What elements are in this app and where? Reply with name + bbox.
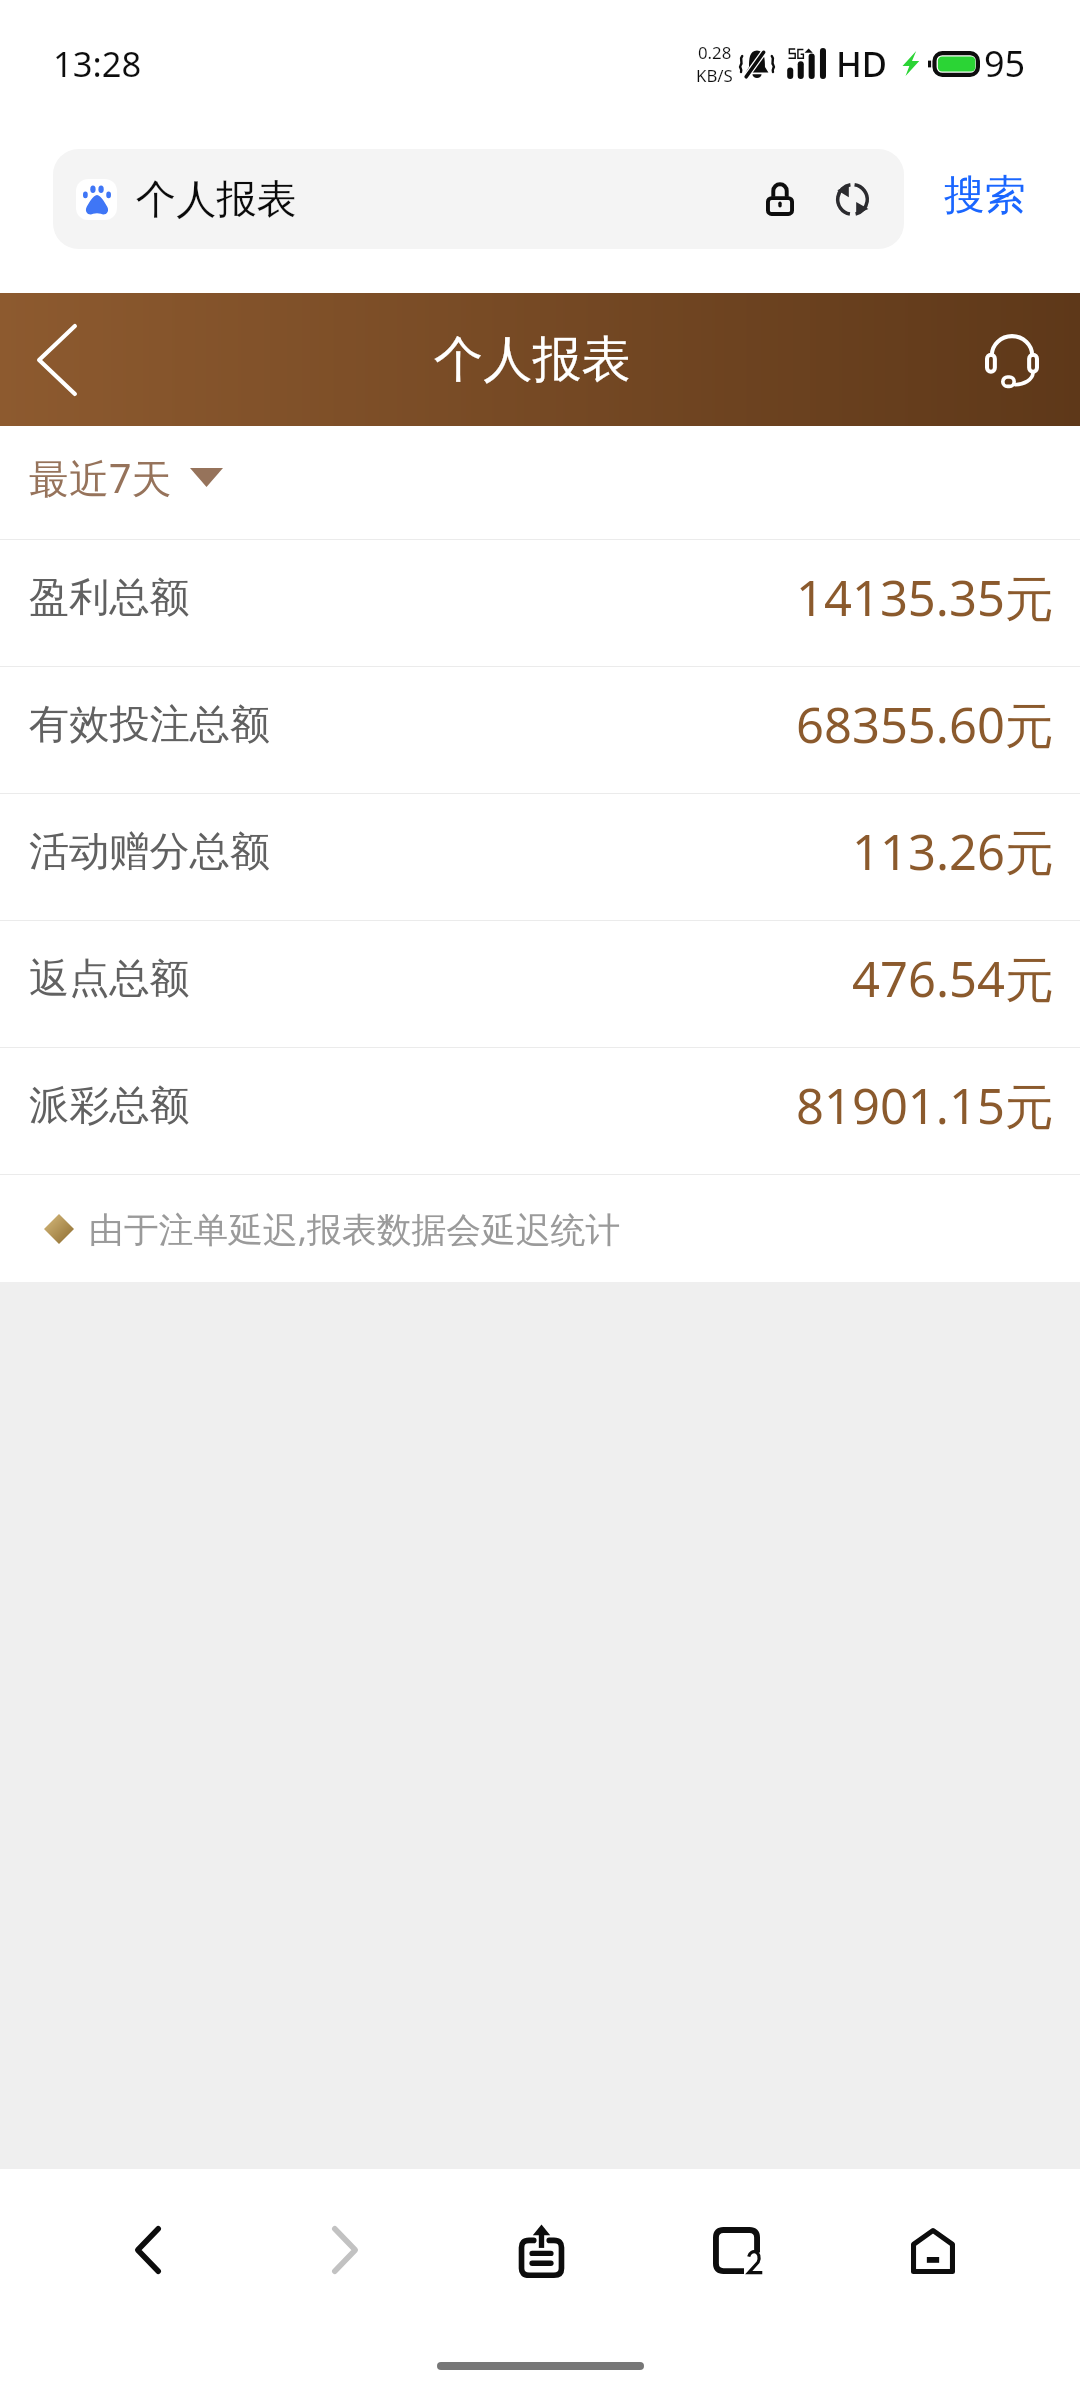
button[interactable]: Secure connection bbox=[748, 150, 811, 249]
staticText: 476.54元 bbox=[852, 945, 1054, 1012]
staticText: 返点总额 bbox=[29, 953, 190, 1004]
staticText: 113.26元 bbox=[852, 818, 1054, 885]
button[interactable]: 搜索 bbox=[924, 149, 1026, 249]
button[interactable]: Tabs bbox=[671, 2184, 803, 2316]
staticText: 0.28 bbox=[698, 41, 732, 64]
staticText: 由于注单延迟,报表数据会延迟统计 bbox=[89, 1205, 621, 1253]
button[interactable]: 有效投注总额 bbox=[0, 667, 1080, 793]
staticText: 95 bbox=[984, 39, 1026, 88]
button[interactable]: 活动赠分总额 bbox=[0, 794, 1080, 920]
button[interactable]: 最近7天 bbox=[0, 426, 1080, 539]
staticText: KB/S bbox=[696, 64, 733, 87]
staticText: 68355.60元 bbox=[796, 691, 1054, 758]
button[interactable]: Back bbox=[0, 294, 114, 426]
button[interactable]: Back bbox=[82, 2184, 214, 2316]
staticText: 个人报表 bbox=[136, 174, 297, 225]
staticText: 有效投注总额 bbox=[29, 699, 271, 750]
staticText: 最近7天 bbox=[29, 450, 172, 504]
staticText: 活动赠分总额 bbox=[29, 826, 271, 877]
button[interactable]: 派彩总额 bbox=[0, 1048, 1080, 1174]
staticText: 个人报表 bbox=[434, 329, 631, 391]
button[interactable]: 返点总额 bbox=[0, 921, 1080, 1047]
staticText: 盈利总额 bbox=[29, 572, 190, 623]
staticText: 81901.15元 bbox=[796, 1072, 1054, 1139]
staticText: 13:28 bbox=[53, 40, 142, 87]
button[interactable]: Forward bbox=[279, 2184, 411, 2316]
button[interactable]: Customer service bbox=[952, 294, 1072, 426]
staticText: 14135.35元 bbox=[796, 564, 1054, 631]
button[interactable]: 盈利总额 bbox=[0, 540, 1080, 666]
staticText: 派彩总额 bbox=[29, 1080, 190, 1131]
button[interactable]: 个人报表 bbox=[53, 149, 904, 249]
button[interactable]: Refresh bbox=[821, 150, 884, 249]
staticText: 搜索 bbox=[944, 170, 1026, 221]
button[interactable]: Home bbox=[867, 2184, 999, 2316]
button[interactable]: Share bbox=[475, 2184, 607, 2316]
staticText: HD bbox=[836, 40, 888, 87]
